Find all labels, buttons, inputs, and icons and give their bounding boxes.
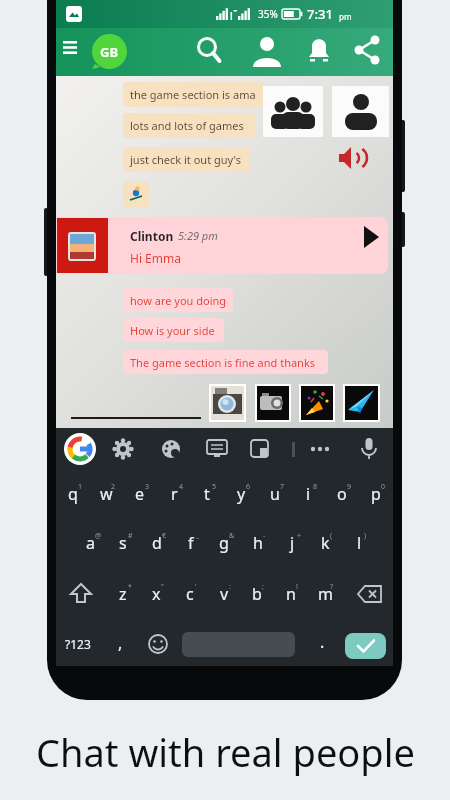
staticText: How is your side	[130, 323, 215, 338]
staticText: p	[371, 483, 381, 505]
staticText: 7	[280, 482, 285, 492]
staticText: v	[220, 583, 229, 605]
button[interactable]	[160, 438, 182, 460]
staticText: n	[286, 583, 296, 605]
staticText: h	[253, 532, 263, 554]
button[interactable]: how are you doing	[123, 288, 233, 312]
button[interactable]: GB	[91, 34, 128, 70]
staticText: Hi Emma	[130, 250, 181, 266]
button[interactable]	[359, 437, 379, 461]
staticText: 3	[145, 482, 150, 492]
staticText: 0	[381, 482, 386, 492]
staticText: '	[195, 582, 197, 592]
staticText: y	[237, 483, 246, 505]
staticText: g	[219, 532, 229, 554]
staticText: 7:31	[307, 5, 333, 23]
button[interactable]	[64, 433, 96, 465]
staticText: Chat with real people	[36, 726, 415, 778]
staticText: pm	[339, 11, 352, 22]
staticText: "	[161, 582, 164, 592]
button[interactable]	[249, 439, 271, 459]
button[interactable]	[148, 634, 169, 655]
staticText: 8	[313, 482, 318, 492]
button[interactable]	[209, 384, 246, 422]
staticText: 5	[212, 482, 217, 492]
staticText: 4	[179, 482, 184, 492]
staticText: GB	[100, 43, 119, 61]
staticText: f	[188, 532, 194, 554]
button[interactable]	[345, 633, 386, 659]
staticText: *	[128, 582, 132, 592]
button[interactable]	[343, 384, 380, 422]
staticText: Clinton	[130, 228, 174, 244]
staticText: just check it out guy's	[130, 152, 242, 167]
button[interactable]	[354, 36, 380, 64]
button[interactable]: the game section is ama	[123, 82, 265, 107]
staticText: i	[306, 483, 311, 505]
staticText: k	[321, 532, 330, 554]
staticText: @	[95, 531, 102, 541]
staticText: ?	[330, 582, 334, 592]
staticText: m	[318, 583, 333, 605]
staticText: .	[320, 631, 325, 653]
staticText: -	[263, 531, 266, 541]
button[interactable]	[332, 86, 389, 137]
button[interactable]: .	[314, 630, 330, 654]
staticText: lots and lots of games	[130, 118, 244, 133]
button[interactable]: ?123	[62, 634, 94, 654]
button[interactable]	[70, 583, 94, 605]
staticText: r	[171, 483, 178, 505]
staticText: x	[152, 583, 161, 605]
staticText: j	[290, 532, 295, 554]
staticText: e	[135, 483, 145, 505]
staticText: €	[162, 531, 167, 541]
button[interactable]	[306, 37, 332, 65]
staticText: t	[204, 483, 210, 505]
button[interactable]	[299, 384, 335, 422]
staticText: The game section is fine and thanks	[130, 355, 316, 370]
staticText: 2	[111, 482, 116, 492]
staticText: :	[229, 582, 231, 592]
staticText: &	[229, 531, 235, 541]
staticText: (	[330, 531, 333, 541]
staticText: how are you doing	[130, 293, 227, 308]
staticText: w	[100, 483, 113, 505]
staticText: c	[186, 583, 194, 605]
staticText: ?123	[65, 636, 91, 652]
staticText: 1	[78, 482, 83, 492]
staticText: 9	[347, 482, 352, 492]
button[interactable]	[112, 438, 134, 460]
staticText: u	[270, 483, 280, 505]
button[interactable]	[182, 632, 295, 657]
button[interactable]	[197, 37, 223, 65]
button[interactable]	[252, 36, 282, 68]
button[interactable]	[263, 86, 323, 137]
staticText: o	[337, 483, 347, 505]
button[interactable]	[63, 41, 78, 55]
staticText: _	[196, 531, 200, 541]
staticText: #	[128, 531, 133, 541]
staticText: 5:29 pm	[178, 228, 218, 243]
button[interactable]: ,	[112, 632, 128, 654]
staticText: d	[152, 532, 162, 554]
button[interactable]	[206, 439, 228, 459]
staticText: l	[357, 532, 362, 554]
button[interactable]: lots and lots of games	[123, 113, 255, 138]
staticText: q	[68, 483, 78, 505]
staticText: b	[252, 583, 262, 605]
staticText: the game section is ama	[130, 87, 256, 102]
button[interactable]: just check it out guy's	[123, 147, 250, 172]
button[interactable]	[339, 146, 363, 171]
staticText: )	[364, 531, 367, 541]
staticText: z	[119, 583, 127, 605]
staticText: s	[119, 532, 127, 554]
staticText: !	[296, 582, 298, 592]
button[interactable]	[357, 584, 383, 604]
button[interactable]: The game section is fine and thanks	[123, 350, 328, 374]
button[interactable]	[56, 217, 388, 274]
button[interactable]: How is your side	[123, 318, 224, 342]
staticText: 35%	[258, 7, 278, 21]
staticText: 6	[246, 482, 251, 492]
button[interactable]	[255, 384, 291, 422]
staticText: ;	[262, 582, 264, 592]
